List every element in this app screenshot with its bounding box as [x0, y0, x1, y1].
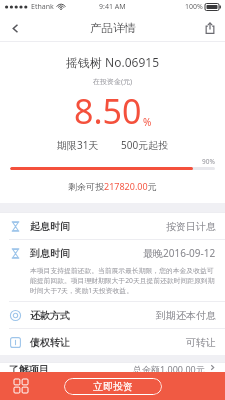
staticText: 起息时间 [30, 220, 70, 233]
button[interactable]: 债权转让 [0, 329, 225, 355]
button[interactable]: Calculator [0, 372, 42, 400]
staticText: 债权转让 [30, 336, 70, 349]
staticText: 9:41 AM [99, 2, 126, 12]
staticText: 还款方式 [30, 309, 70, 322]
staticText: 摇钱树 No.06915 [66, 54, 160, 70]
button[interactable]: 起息时间 [0, 213, 225, 239]
staticText: 期限31天 [57, 138, 99, 152]
button[interactable]: 了解项目 [0, 363, 225, 372]
staticText: 90% [202, 157, 215, 166]
staticText: 可转让 [186, 336, 216, 349]
staticText: % [143, 115, 152, 129]
button[interactable]: Back [0, 14, 30, 42]
staticText: 到息时间 [30, 247, 70, 260]
button[interactable]: 到息时间 [0, 240, 225, 266]
staticText: 8.50 [74, 88, 142, 134]
staticText: 按资日计息 [166, 220, 216, 233]
staticText: 在投资金(元) [93, 77, 133, 87]
staticText: Ethank [31, 2, 54, 12]
button[interactable]: Share [195, 14, 225, 42]
staticText: 最晚2016-09-12 [143, 246, 216, 260]
staticText: 500元起投 [121, 138, 169, 152]
staticText: 总金额1,000.00元 [133, 363, 205, 372]
button[interactable]: 还款方式 [0, 302, 225, 328]
staticText: 剩余可投217820.00元 [68, 180, 157, 192]
button[interactable]: 立即投资 [64, 378, 162, 395]
staticText: 到期还本付息 [156, 309, 216, 322]
staticText: 100% [185, 2, 203, 12]
staticText: 本项目支持提前还款。当前展示最长期限，您的本金及收益可能提前回款。项目理财期限大… [30, 266, 215, 295]
staticText: 了解项目 [9, 363, 49, 372]
staticText: 立即投资 [93, 380, 133, 393]
staticText: 产品详情 [90, 21, 136, 35]
